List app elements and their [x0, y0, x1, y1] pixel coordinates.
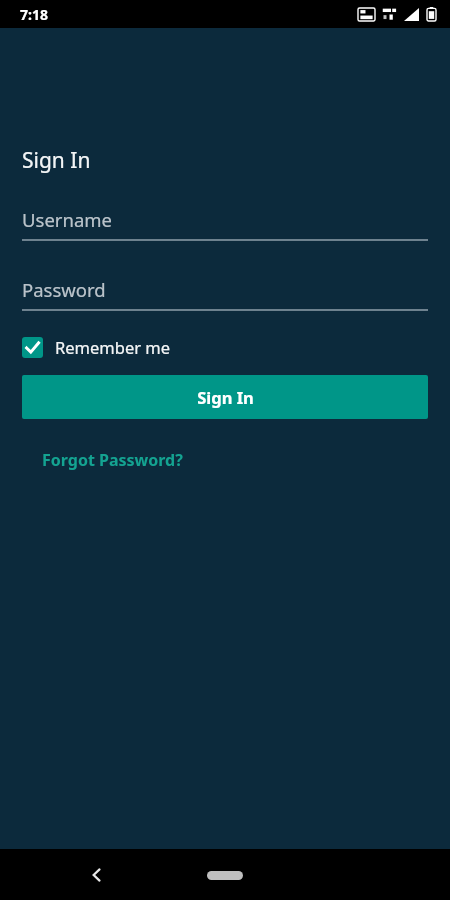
staticText: Username — [22, 207, 113, 232]
staticText: Remember me — [55, 336, 171, 358]
staticText: 7:18 — [20, 5, 48, 24]
staticText: Forgot Password? — [42, 449, 183, 471]
button[interactable]: Sign In — [22, 375, 428, 419]
button[interactable]: Forgot Password? — [22, 443, 203, 477]
button[interactable]: Back — [75, 853, 119, 897]
staticText: Password — [22, 277, 106, 302]
button[interactable]: Remember me — [22, 336, 171, 358]
button[interactable]: Username — [22, 207, 428, 241]
staticText: Sign In — [197, 386, 254, 408]
button[interactable]: Home — [195, 860, 255, 890]
staticText: Sign In — [22, 146, 91, 175]
button[interactable]: Password — [22, 277, 428, 311]
